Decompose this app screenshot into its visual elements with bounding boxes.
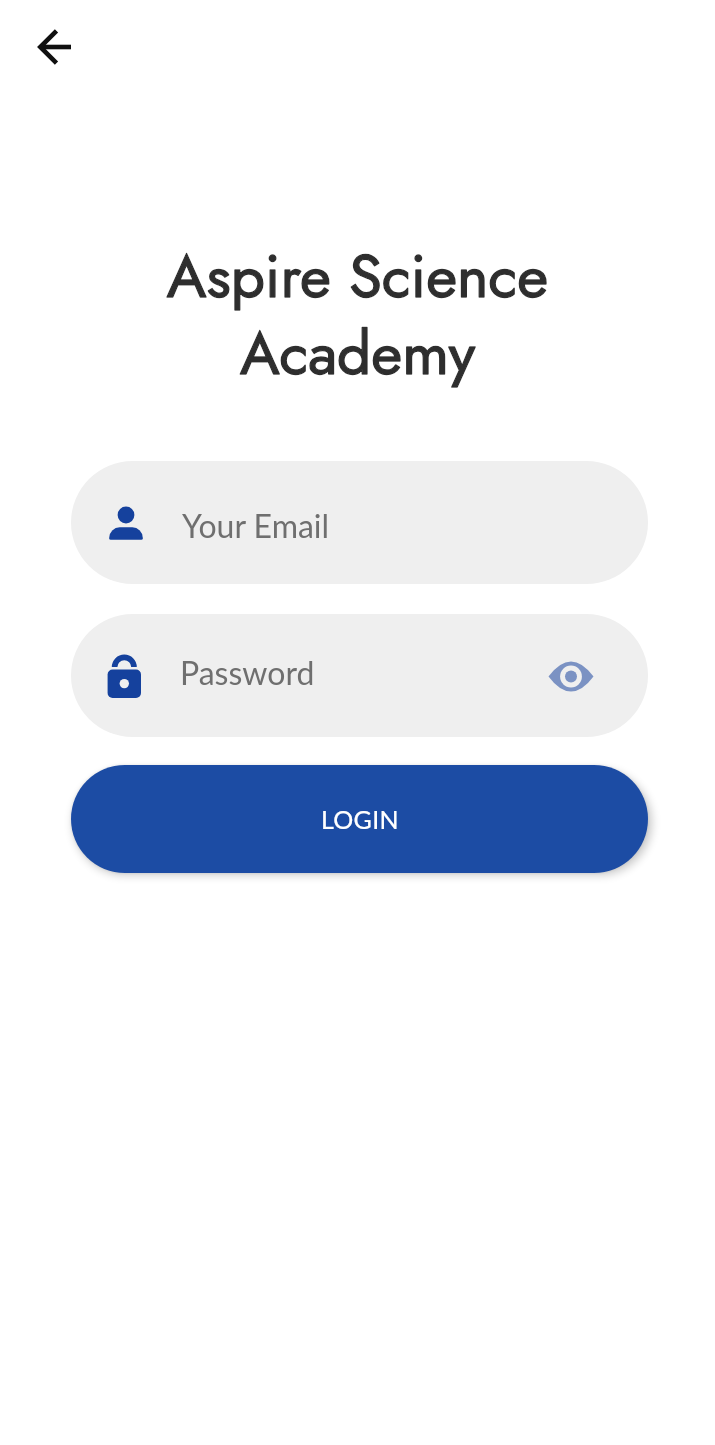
staticText: LOGIN [321, 804, 399, 834]
staticText: Aspire Science Academy [0, 233, 715, 397]
button[interactable] [32, 23, 80, 71]
button[interactable]: LOGIN [71, 765, 648, 873]
button[interactable]: Password [71, 614, 648, 737]
button[interactable]: Your Email [71, 461, 648, 584]
staticText: Aspire Science Academy [0, 233, 715, 397]
staticText: Your Email [182, 506, 330, 544]
staticText: Password [180, 653, 315, 691]
button[interactable] [548, 653, 594, 699]
